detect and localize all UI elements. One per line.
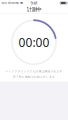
staticText: 完了時に通知でお知らせします [13,75,55,78]
staticText: バックグラウンドでも計測は継続されます [5,70,62,73]
staticText: 9:41 [30,0,37,6]
staticText: 00:00 [18,34,49,50]
staticText: docomo [8,1,19,5]
staticText: 計測中 [26,6,41,13]
